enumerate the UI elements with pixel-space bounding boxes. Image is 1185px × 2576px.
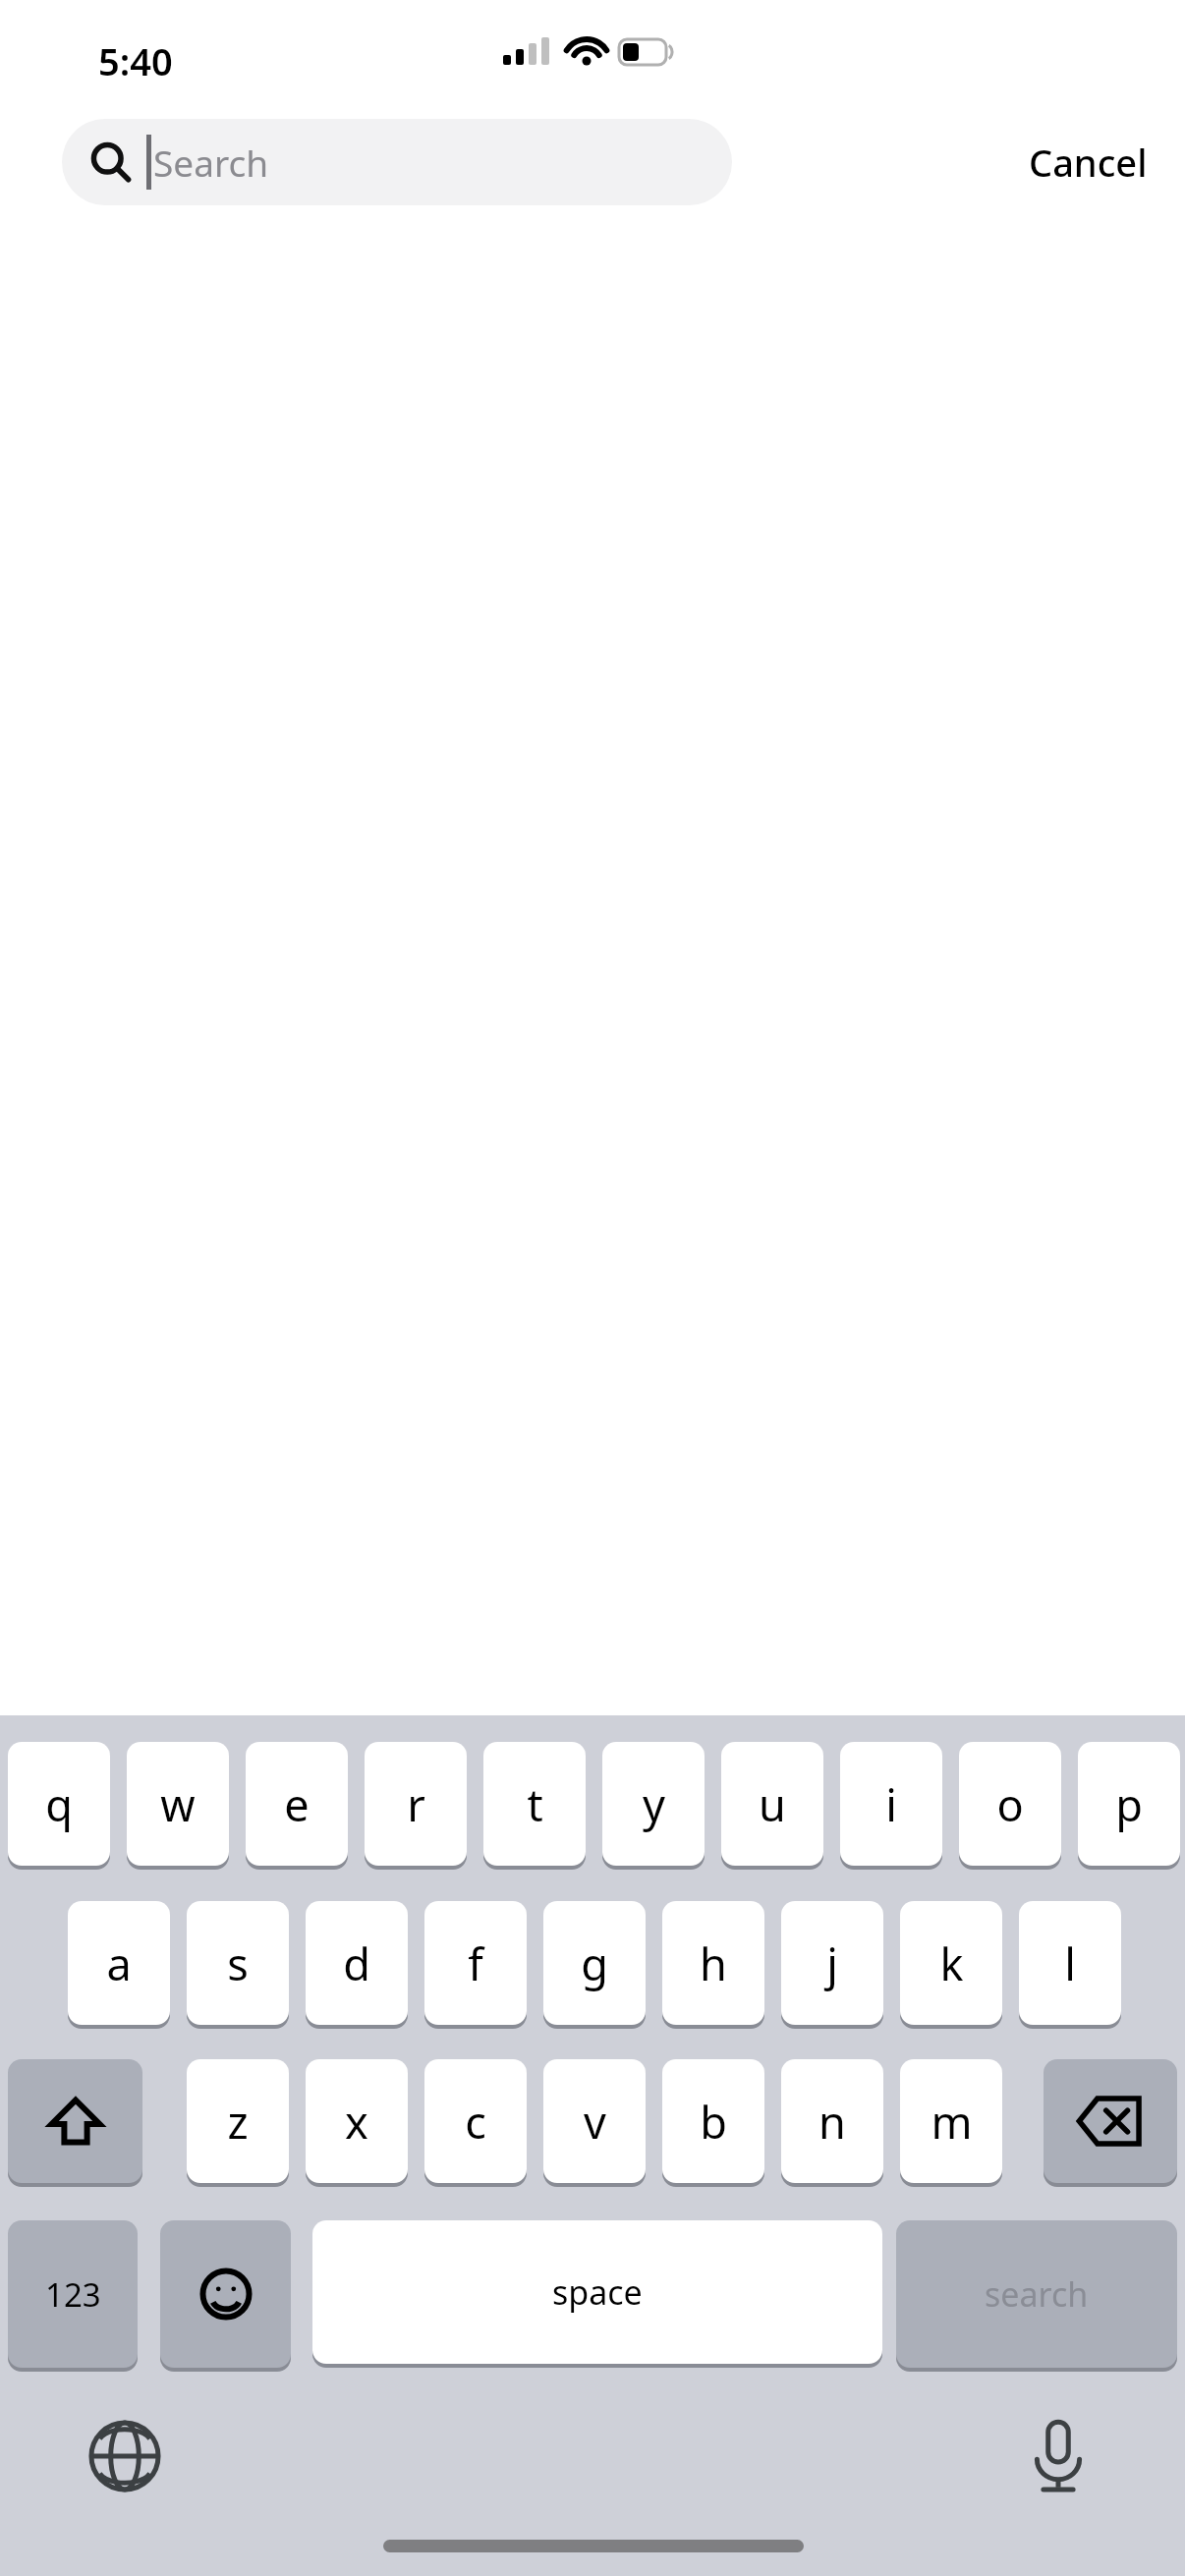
button[interactable]: Change keyboard [66, 2403, 184, 2509]
button[interactable]: r [365, 1742, 467, 1866]
staticText: n [818, 2092, 846, 2152]
button[interactable]: f [424, 1901, 527, 2025]
button[interactable]: w [127, 1742, 229, 1866]
staticText: x [345, 2092, 368, 2152]
staticText: Cancel [1029, 137, 1148, 188]
button[interactable]: e [246, 1742, 348, 1866]
button[interactable]: p [1078, 1742, 1180, 1866]
staticText: Search [153, 138, 269, 187]
staticText: t [527, 1774, 543, 1834]
staticText: f [468, 1933, 483, 1993]
staticText: search [985, 2271, 1089, 2317]
button[interactable]: y [602, 1742, 705, 1866]
button[interactable]: Search [62, 119, 732, 205]
button[interactable]: Emoji [160, 2220, 291, 2368]
button[interactable]: n [781, 2059, 883, 2183]
staticText: k [939, 1933, 964, 1993]
staticText: v [584, 2092, 606, 2152]
staticText: l [1064, 1933, 1076, 1993]
button[interactable]: h [662, 1901, 764, 2025]
button[interactable]: Dictation [999, 2403, 1117, 2509]
button[interactable]: o [959, 1742, 1061, 1866]
staticText: c [465, 2092, 486, 2152]
button[interactable]: Shift [8, 2059, 142, 2183]
staticText: q [45, 1774, 73, 1834]
button[interactable]: l [1019, 1901, 1121, 2025]
staticText: w [160, 1774, 196, 1834]
staticText: e [284, 1774, 310, 1834]
button[interactable]: x [306, 2059, 408, 2183]
button[interactable]: z [187, 2059, 289, 2183]
button[interactable]: b [662, 2059, 764, 2183]
button[interactable]: u [721, 1742, 823, 1866]
button[interactable]: Backspace [1044, 2059, 1177, 2183]
staticText: p [1115, 1774, 1143, 1834]
button[interactable]: v [543, 2059, 646, 2183]
staticText: o [996, 1774, 1024, 1834]
button[interactable]: m [900, 2059, 1002, 2183]
button[interactable]: s [187, 1901, 289, 2025]
button[interactable]: j [781, 1901, 883, 2025]
button[interactable]: q [8, 1742, 110, 1866]
button[interactable]: a [68, 1901, 170, 2025]
staticText: a [106, 1933, 132, 1993]
staticText: h [700, 1933, 727, 1993]
button[interactable]: Search [896, 2220, 1177, 2368]
button[interactable]: Numbers [8, 2220, 138, 2368]
button[interactable]: c [424, 2059, 527, 2183]
button[interactable]: i [840, 1742, 942, 1866]
staticText: b [700, 2092, 727, 2152]
staticText: y [643, 1774, 665, 1834]
button[interactable]: space [312, 2220, 882, 2364]
staticText: m [931, 2092, 973, 2152]
staticText: g [581, 1933, 608, 1993]
staticText: d [343, 1933, 370, 1993]
staticText: 123 [45, 2272, 101, 2317]
staticText: u [759, 1774, 786, 1834]
button[interactable]: t [483, 1742, 586, 1866]
staticText: 5:40 [98, 35, 173, 86]
staticText: s [227, 1933, 249, 1993]
staticText: i [885, 1774, 897, 1834]
button[interactable]: d [306, 1901, 408, 2025]
staticText: j [826, 1933, 838, 1993]
staticText: r [407, 1774, 425, 1834]
button[interactable]: k [900, 1901, 1002, 2025]
button[interactable]: g [543, 1901, 646, 2025]
staticText: space [552, 2269, 643, 2315]
button[interactable]: Cancel [1003, 121, 1173, 203]
staticText: z [227, 2092, 249, 2152]
